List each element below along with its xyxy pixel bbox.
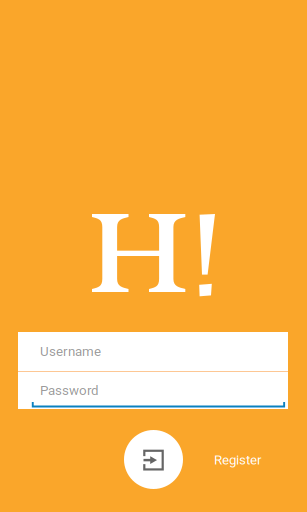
button[interactable]: Register (214, 450, 274, 470)
staticText: Password (40, 383, 99, 398)
staticText: Username (40, 344, 101, 359)
button[interactable]: Log in (124, 430, 183, 489)
staticText: Register (214, 452, 262, 468)
